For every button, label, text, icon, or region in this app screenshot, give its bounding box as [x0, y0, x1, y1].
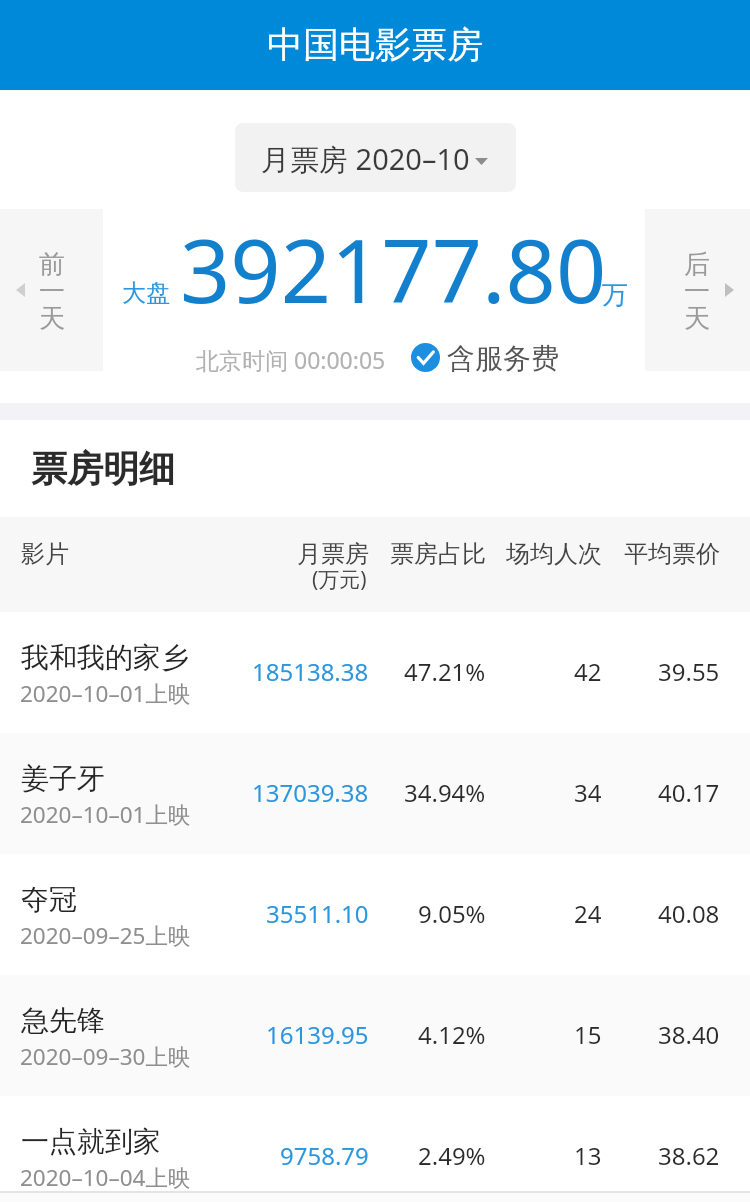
staticText: 35511.10 — [266, 897, 369, 930]
button[interactable]: 前一天 — [0, 209, 103, 371]
staticText: 北京时间 00:00:05 — [196, 344, 386, 375]
staticText: 夺冠 — [21, 882, 77, 917]
staticText: 38.40 — [658, 1018, 720, 1051]
staticText: 34.94% — [404, 776, 486, 809]
staticText: 中国电影票房 — [267, 22, 483, 67]
staticText: (万元) — [312, 565, 367, 594]
staticText: 392177.80 — [180, 209, 607, 329]
staticText: 含服务费 — [447, 341, 559, 376]
staticText: 2020–10–04上映 — [20, 1162, 191, 1193]
staticText: 月票房 — [297, 539, 369, 569]
button[interactable]: 月票房 2020–10 — [235, 123, 516, 192]
button[interactable]: 夺冠 — [0, 854, 750, 975]
staticText: 39.55 — [658, 655, 720, 688]
staticText: 137039.38 — [252, 776, 369, 809]
button[interactable]: 一点就到家 — [0, 1096, 750, 1202]
button[interactable]: 我和我的家乡 — [0, 612, 750, 733]
staticText: 47.21% — [404, 655, 486, 688]
staticText: 急先锋 — [21, 1003, 105, 1038]
staticText: 万 — [602, 279, 628, 312]
staticText: 40.08 — [658, 897, 720, 930]
staticText: 2020–09–25上映 — [20, 920, 191, 951]
staticText: 2020–09–30上映 — [20, 1041, 191, 1072]
staticText: 24 — [574, 897, 602, 930]
staticText: 42 — [574, 655, 602, 688]
staticText: 2.49% — [418, 1139, 486, 1172]
staticText: 后 一 天 — [684, 248, 710, 335]
staticText: 38.62 — [658, 1139, 720, 1172]
staticText: 9.05% — [418, 897, 486, 930]
staticText: 票房明细 — [31, 446, 175, 491]
staticText: 4.12% — [418, 1018, 486, 1051]
staticText: 影片 — [21, 539, 69, 569]
staticText: 9758.79 — [280, 1139, 369, 1172]
staticText: 我和我的家乡 — [21, 640, 189, 675]
staticText: 场均人次 — [506, 539, 602, 569]
staticText: 13 — [574, 1139, 602, 1172]
staticText: 姜子牙 — [21, 761, 105, 796]
button[interactable]: 姜子牙 — [0, 733, 750, 854]
staticText: 2020–10–01上映 — [20, 678, 191, 709]
button[interactable]: 急先锋 — [0, 975, 750, 1096]
staticText: 40.17 — [658, 776, 720, 809]
staticText: 前 一 天 — [39, 248, 65, 335]
staticText: 月票房 2020–10 — [261, 139, 470, 179]
button[interactable]: 后一天 — [645, 209, 750, 371]
staticText: 票房占比 — [390, 539, 486, 569]
staticText: 15 — [574, 1018, 602, 1051]
staticText: 大盘 — [122, 278, 170, 308]
staticText: 平均票价 — [624, 539, 720, 569]
staticText: 34 — [574, 776, 602, 809]
staticText: 185138.38 — [252, 655, 369, 688]
staticText: 一点就到家 — [21, 1124, 161, 1159]
staticText: 16139.95 — [266, 1018, 369, 1051]
staticText: 2020–10–01上映 — [20, 799, 191, 830]
